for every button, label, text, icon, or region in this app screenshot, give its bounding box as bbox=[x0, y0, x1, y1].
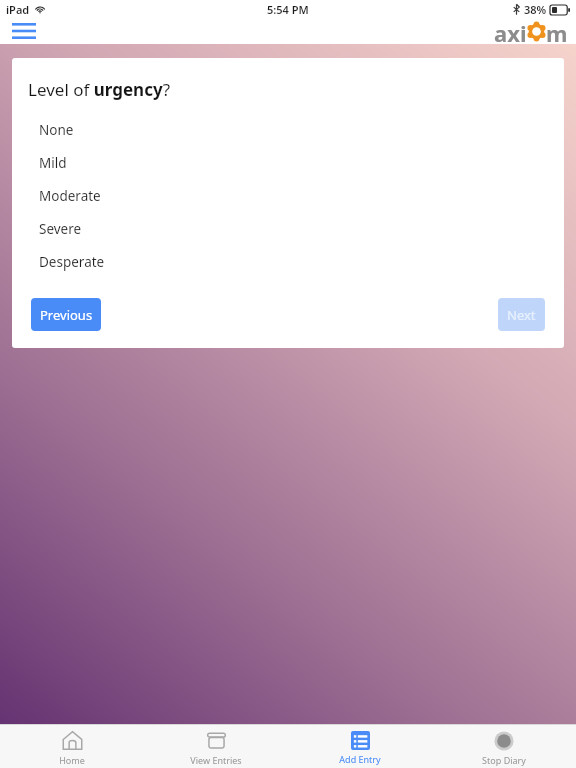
staticText: Severe bbox=[39, 220, 82, 238]
button[interactable]: Previous bbox=[31, 298, 101, 331]
staticText: 38% bbox=[524, 2, 547, 17]
staticText: iPad bbox=[6, 2, 30, 17]
staticText: Previous bbox=[40, 306, 93, 324]
button[interactable]: View Entries bbox=[144, 725, 288, 768]
staticText: None bbox=[39, 121, 74, 139]
staticText: Add Entry bbox=[339, 753, 381, 765]
button[interactable]: None bbox=[12, 113, 564, 146]
button[interactable]: Home bbox=[0, 725, 144, 768]
staticText: Home bbox=[59, 754, 85, 766]
button[interactable]: Mild bbox=[12, 146, 564, 179]
button[interactable]: Moderate bbox=[12, 179, 564, 212]
staticText: 5:54 PM bbox=[267, 2, 309, 17]
button[interactable]: Next bbox=[498, 298, 545, 331]
staticText: Next bbox=[507, 306, 536, 324]
staticText: Moderate bbox=[39, 187, 101, 205]
staticText: Mild bbox=[39, 154, 67, 172]
staticText: View Entries bbox=[190, 754, 242, 766]
staticText: axi bbox=[494, 18, 527, 44]
button[interactable]: Desperate bbox=[12, 245, 564, 278]
staticText: Desperate bbox=[39, 253, 105, 271]
button[interactable]: Severe bbox=[12, 212, 564, 245]
button[interactable]: Menu bbox=[8, 19, 40, 43]
button[interactable]: Stop Diary bbox=[432, 725, 576, 768]
staticText: Stop Diary bbox=[482, 754, 526, 766]
button[interactable]: Add Entry bbox=[288, 725, 432, 768]
staticText: Level of urgency? bbox=[28, 78, 171, 101]
staticText: m bbox=[546, 18, 568, 44]
